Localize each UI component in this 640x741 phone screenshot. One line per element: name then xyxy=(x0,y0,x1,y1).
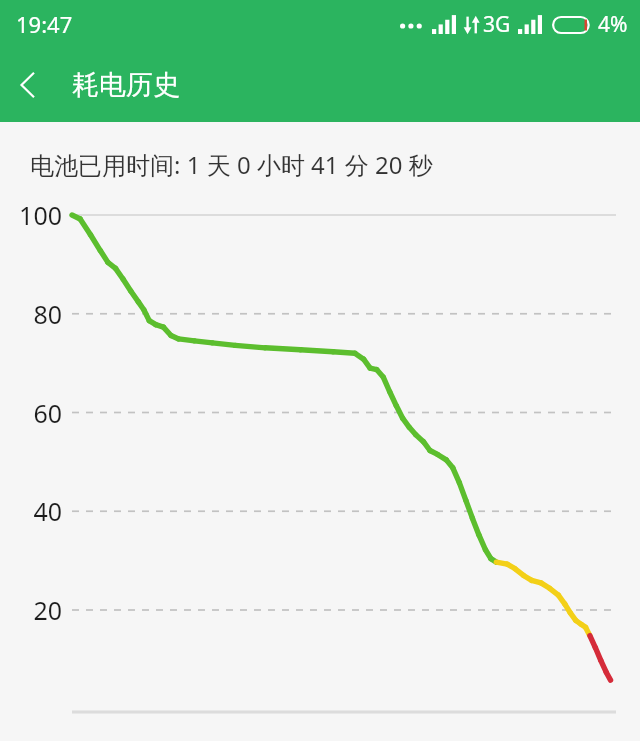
staticText: 电池已用时间: 1 天 0 小时 41 分 20 秒 xyxy=(30,148,433,181)
staticText: 19:47 xyxy=(16,9,73,39)
staticText: 3G xyxy=(483,10,511,39)
staticText: 耗电历史 xyxy=(72,68,180,102)
staticText: 60 xyxy=(0,396,62,430)
staticText: 100 xyxy=(0,198,62,232)
staticText: 80 xyxy=(0,297,62,331)
staticText: 20 xyxy=(0,593,62,627)
staticText: 4% xyxy=(598,10,628,39)
staticText: 40 xyxy=(0,494,62,528)
button[interactable]: Back xyxy=(0,57,56,113)
